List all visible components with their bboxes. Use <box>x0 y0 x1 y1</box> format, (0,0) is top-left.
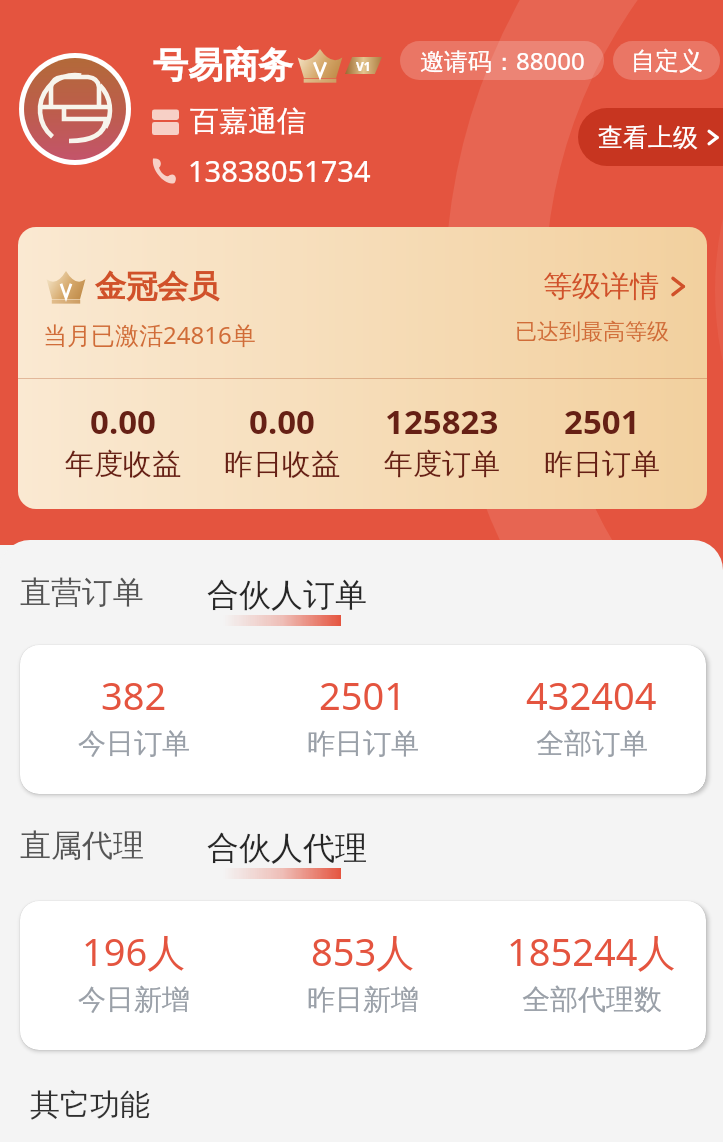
staticText: 0.00 <box>249 399 315 444</box>
staticText: 直营订单 <box>20 573 144 612</box>
staticText: 百嘉通信 <box>190 103 306 140</box>
button[interactable]: 合伙人订单 <box>203 573 371 617</box>
staticText: 当月已激活24816单 <box>43 318 256 351</box>
staticText: 昨日收益 <box>224 446 340 483</box>
button[interactable]: 432404 <box>477 669 706 761</box>
staticText: 邀请码：88000 <box>420 44 585 77</box>
staticText: 13838051734 <box>188 151 371 190</box>
button[interactable]: 等级详情 <box>543 268 687 305</box>
button[interactable]: 382 <box>20 669 248 761</box>
staticText: 0.00 <box>90 399 156 444</box>
staticText: 查看上级 <box>598 122 698 153</box>
staticText: 125823 <box>385 399 499 444</box>
staticText: 已达到最高等级 <box>515 318 669 346</box>
staticText: V1 <box>356 58 371 74</box>
staticText: 年度订单 <box>384 446 500 483</box>
staticText: 合伙人订单 <box>207 575 367 615</box>
staticText: 382 <box>101 669 167 721</box>
staticText: 年度收益 <box>65 446 181 483</box>
staticText: 全部订单 <box>536 726 648 761</box>
staticText: 直属代理 <box>20 826 144 865</box>
staticText: 全部代理数 <box>522 982 662 1017</box>
button[interactable]: Profile avatar <box>18 52 132 166</box>
staticText: 等级详情 <box>543 268 659 305</box>
staticText: 合伙人代理 <box>207 828 367 868</box>
staticText: 2501 <box>564 399 640 444</box>
staticText: 昨日订单 <box>307 726 419 761</box>
button[interactable]: 196人 <box>20 925 248 1017</box>
button[interactable]: 直属代理 <box>16 822 148 869</box>
staticText: 自定义 <box>631 46 703 76</box>
staticText: 2501 <box>319 669 406 721</box>
button[interactable]: 查看上级 <box>578 108 723 166</box>
button[interactable]: 853人 <box>248 925 477 1017</box>
staticText: 其它功能 <box>30 1086 150 1124</box>
staticText: 今日新增 <box>78 982 190 1017</box>
button[interactable]: 125823 <box>362 399 522 483</box>
staticText: 昨日新增 <box>307 982 419 1017</box>
staticText: 185244人 <box>507 925 676 977</box>
staticText: 今日订单 <box>78 726 190 761</box>
button[interactable]: 185244人 <box>477 925 706 1017</box>
button[interactable]: 2501 <box>248 669 477 761</box>
staticText: 196人 <box>82 925 186 977</box>
staticText: 昨日订单 <box>544 446 660 483</box>
button[interactable]: 0.00 <box>202 399 362 483</box>
button[interactable]: 自定义 <box>613 41 720 80</box>
button[interactable]: 合伙人代理 <box>203 826 371 870</box>
button[interactable]: 直营订单 <box>16 569 148 616</box>
button[interactable]: 2501 <box>522 399 682 483</box>
staticText: 号易商务 <box>153 43 293 87</box>
button[interactable]: 邀请码：88000 <box>400 41 604 80</box>
staticText: 432404 <box>526 669 657 721</box>
staticText: 金冠会员 <box>95 267 219 306</box>
staticText: 853人 <box>311 925 415 977</box>
button[interactable]: 0.00 <box>43 399 202 483</box>
